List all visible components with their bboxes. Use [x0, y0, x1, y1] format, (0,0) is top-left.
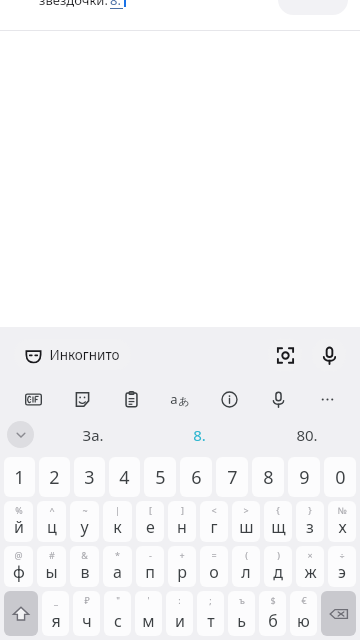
button[interactable]: 4 [109, 457, 140, 497]
staticText: @ [14, 549, 23, 561]
staticText: + [179, 549, 185, 561]
button[interactable]: За. [40, 415, 146, 454]
staticText: " [116, 594, 120, 606]
staticText: 3 [84, 465, 95, 490]
button[interactable]: € [290, 591, 317, 636]
button[interactable]: 80. [253, 415, 360, 454]
staticText: 7 [227, 465, 238, 490]
button[interactable]: ; [197, 591, 224, 636]
button[interactable]: ] [168, 501, 196, 542]
staticText: % [15, 504, 23, 516]
button[interactable]: * [103, 546, 132, 587]
button[interactable]: < [200, 501, 228, 542]
button[interactable]: ~ [70, 501, 99, 542]
staticText: 0 [335, 465, 346, 490]
staticText: 9 [299, 465, 310, 490]
button[interactable]: 2 [39, 457, 70, 497]
button[interactable]: ÷ [328, 546, 356, 587]
button[interactable]: " [104, 591, 131, 636]
button[interactable]: ( [232, 546, 260, 587]
button[interactable]: Google Lens [268, 338, 302, 372]
staticText: п [145, 561, 155, 583]
button[interactable]: Инкогнито [14, 339, 131, 370]
staticText: ю [297, 610, 310, 632]
button[interactable]: Expand suggestions [7, 421, 34, 448]
button[interactable]: | [103, 501, 132, 542]
staticText: < [211, 504, 217, 516]
staticText: ь [237, 610, 246, 632]
staticText: [ [149, 504, 152, 516]
button[interactable]: 3 [74, 457, 105, 497]
button[interactable]: @ [4, 546, 33, 587]
staticText: х [338, 516, 347, 538]
staticText: у [80, 516, 89, 538]
staticText: 80. [296, 425, 318, 445]
button[interactable]: = [200, 546, 228, 587]
button[interactable]: Voice input [312, 338, 346, 372]
staticText: あ [178, 394, 190, 408]
button[interactable]: + [168, 546, 196, 587]
button[interactable]: > [232, 501, 260, 542]
staticText: 8 [263, 465, 274, 490]
button[interactable]: _ [42, 591, 69, 636]
button[interactable]: 8 [252, 457, 284, 497]
button[interactable]: Info [214, 384, 244, 414]
staticText: № [337, 504, 347, 516]
staticText: 4 [119, 465, 130, 490]
staticText: с [114, 610, 122, 632]
staticText: > [243, 504, 249, 516]
staticText: б [268, 610, 278, 632]
button[interactable]: 5 [144, 457, 176, 497]
button[interactable]: Translate [165, 384, 195, 414]
staticText: ж [304, 561, 317, 583]
button[interactable]: ъ [228, 591, 255, 636]
button[interactable]: ^ [37, 501, 66, 542]
staticText: м [142, 610, 155, 632]
staticText: э [338, 561, 346, 583]
button[interactable]: [ [136, 501, 164, 542]
button[interactable]: Voice typing [263, 384, 293, 414]
button[interactable]: Backspace [321, 591, 356, 636]
button[interactable]: & [70, 546, 99, 587]
staticText: т [207, 610, 215, 632]
button[interactable]: - [136, 546, 164, 587]
staticText: ) [277, 549, 280, 561]
button[interactable]: Shift [4, 591, 38, 636]
button[interactable]: № [328, 501, 356, 542]
staticText: а [113, 561, 122, 583]
staticText: | [115, 504, 120, 516]
staticText: € [301, 594, 307, 606]
button[interactable]: 8. [146, 415, 253, 454]
button[interactable]: Stickers [67, 384, 97, 414]
staticText: 1 [14, 465, 25, 490]
staticText: л [241, 561, 251, 583]
button[interactable]: More options [312, 384, 342, 414]
staticText: ; [209, 594, 212, 606]
staticText: щ [271, 516, 286, 538]
button[interactable]: # [37, 546, 66, 587]
staticText: ^ [49, 504, 55, 516]
button[interactable]: ₽ [73, 591, 100, 636]
button[interactable]: 6 [180, 457, 212, 497]
button[interactable]: : [166, 591, 193, 636]
button[interactable]: } [296, 501, 324, 542]
button[interactable]: $ [259, 591, 286, 636]
button[interactable]: 1 [4, 457, 35, 497]
staticText: ÷ [339, 549, 345, 561]
button[interactable]: 9 [288, 457, 320, 497]
button[interactable]: GIF [18, 384, 48, 414]
button[interactable]: ) [264, 546, 292, 587]
staticText: - [149, 549, 152, 561]
staticText: я [51, 610, 61, 632]
button[interactable]: ' [135, 591, 162, 636]
button[interactable]: 0 [324, 457, 356, 497]
button[interactable]: % [4, 501, 33, 542]
button[interactable]: { [264, 501, 292, 542]
button[interactable]: Clipboard [116, 384, 146, 414]
staticText: е [146, 516, 155, 538]
staticText: ₽ [84, 594, 90, 606]
button[interactable]: 7 [216, 457, 248, 497]
button[interactable]: × [296, 546, 324, 587]
staticText: 8. [110, 0, 121, 9]
staticText: ц [47, 516, 57, 538]
